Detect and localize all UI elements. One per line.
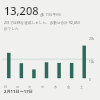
staticText: (1日平均) — [46, 12, 61, 17]
staticText: 2日で目標を達成しました。歩数は合計 92,453 — [4, 20, 80, 25]
staticText: 火 — [28, 85, 32, 89]
staticText: 0 — [89, 78, 91, 82]
staticText: 金 — [67, 85, 71, 89]
staticText: 日 — [4, 85, 8, 89]
staticText: 木 — [54, 85, 58, 89]
button[interactable]: 13,208 — [4, 3, 96, 18]
staticText: 13,208 — [4, 3, 39, 18]
button[interactable]: 2日で目標を達成しました。歩数は合計 92,453 — [4, 20, 96, 32]
button[interactable]: 2月11日〜17日 — [4, 89, 100, 94]
staticText: 月 — [16, 85, 20, 89]
staticText: 土 — [80, 85, 84, 89]
staticText: 20k — [89, 37, 95, 41]
staticText: 水 — [41, 85, 45, 89]
staticText: 歩でした — [4, 27, 19, 32]
staticText: 2月11日〜17日 — [4, 89, 33, 94]
button[interactable]: 週間歩数グラフ — [0, 36, 100, 84]
staticText: 歩 — [40, 12, 44, 17]
staticText: 10k — [89, 60, 95, 64]
